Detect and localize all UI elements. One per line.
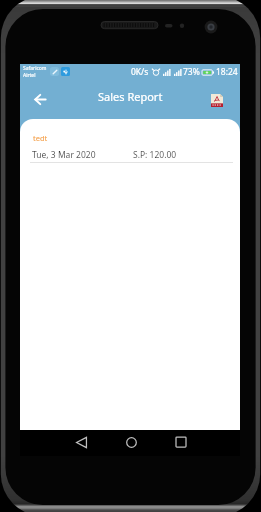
staticText: 18:24: [216, 66, 238, 78]
staticText: S.P: 120.00: [133, 149, 177, 161]
button[interactable]: Export PDF: [207, 90, 227, 110]
staticText: Tue, 3 Mar 2020: [32, 149, 96, 161]
button[interactable]: tedt: [20, 119, 240, 163]
staticText: Safaricom: [23, 65, 47, 72]
staticText: 73%: [183, 66, 200, 78]
button[interactable]: Home: [121, 432, 141, 452]
staticText: tedt: [33, 133, 48, 143]
staticText: 0K/s: [131, 66, 149, 78]
button[interactable]: Back: [71, 432, 91, 452]
staticText: Airtel: [23, 72, 36, 79]
button[interactable]: Back: [28, 87, 52, 111]
staticText: Sales Report: [98, 89, 163, 104]
button[interactable]: Recent apps: [171, 432, 191, 452]
